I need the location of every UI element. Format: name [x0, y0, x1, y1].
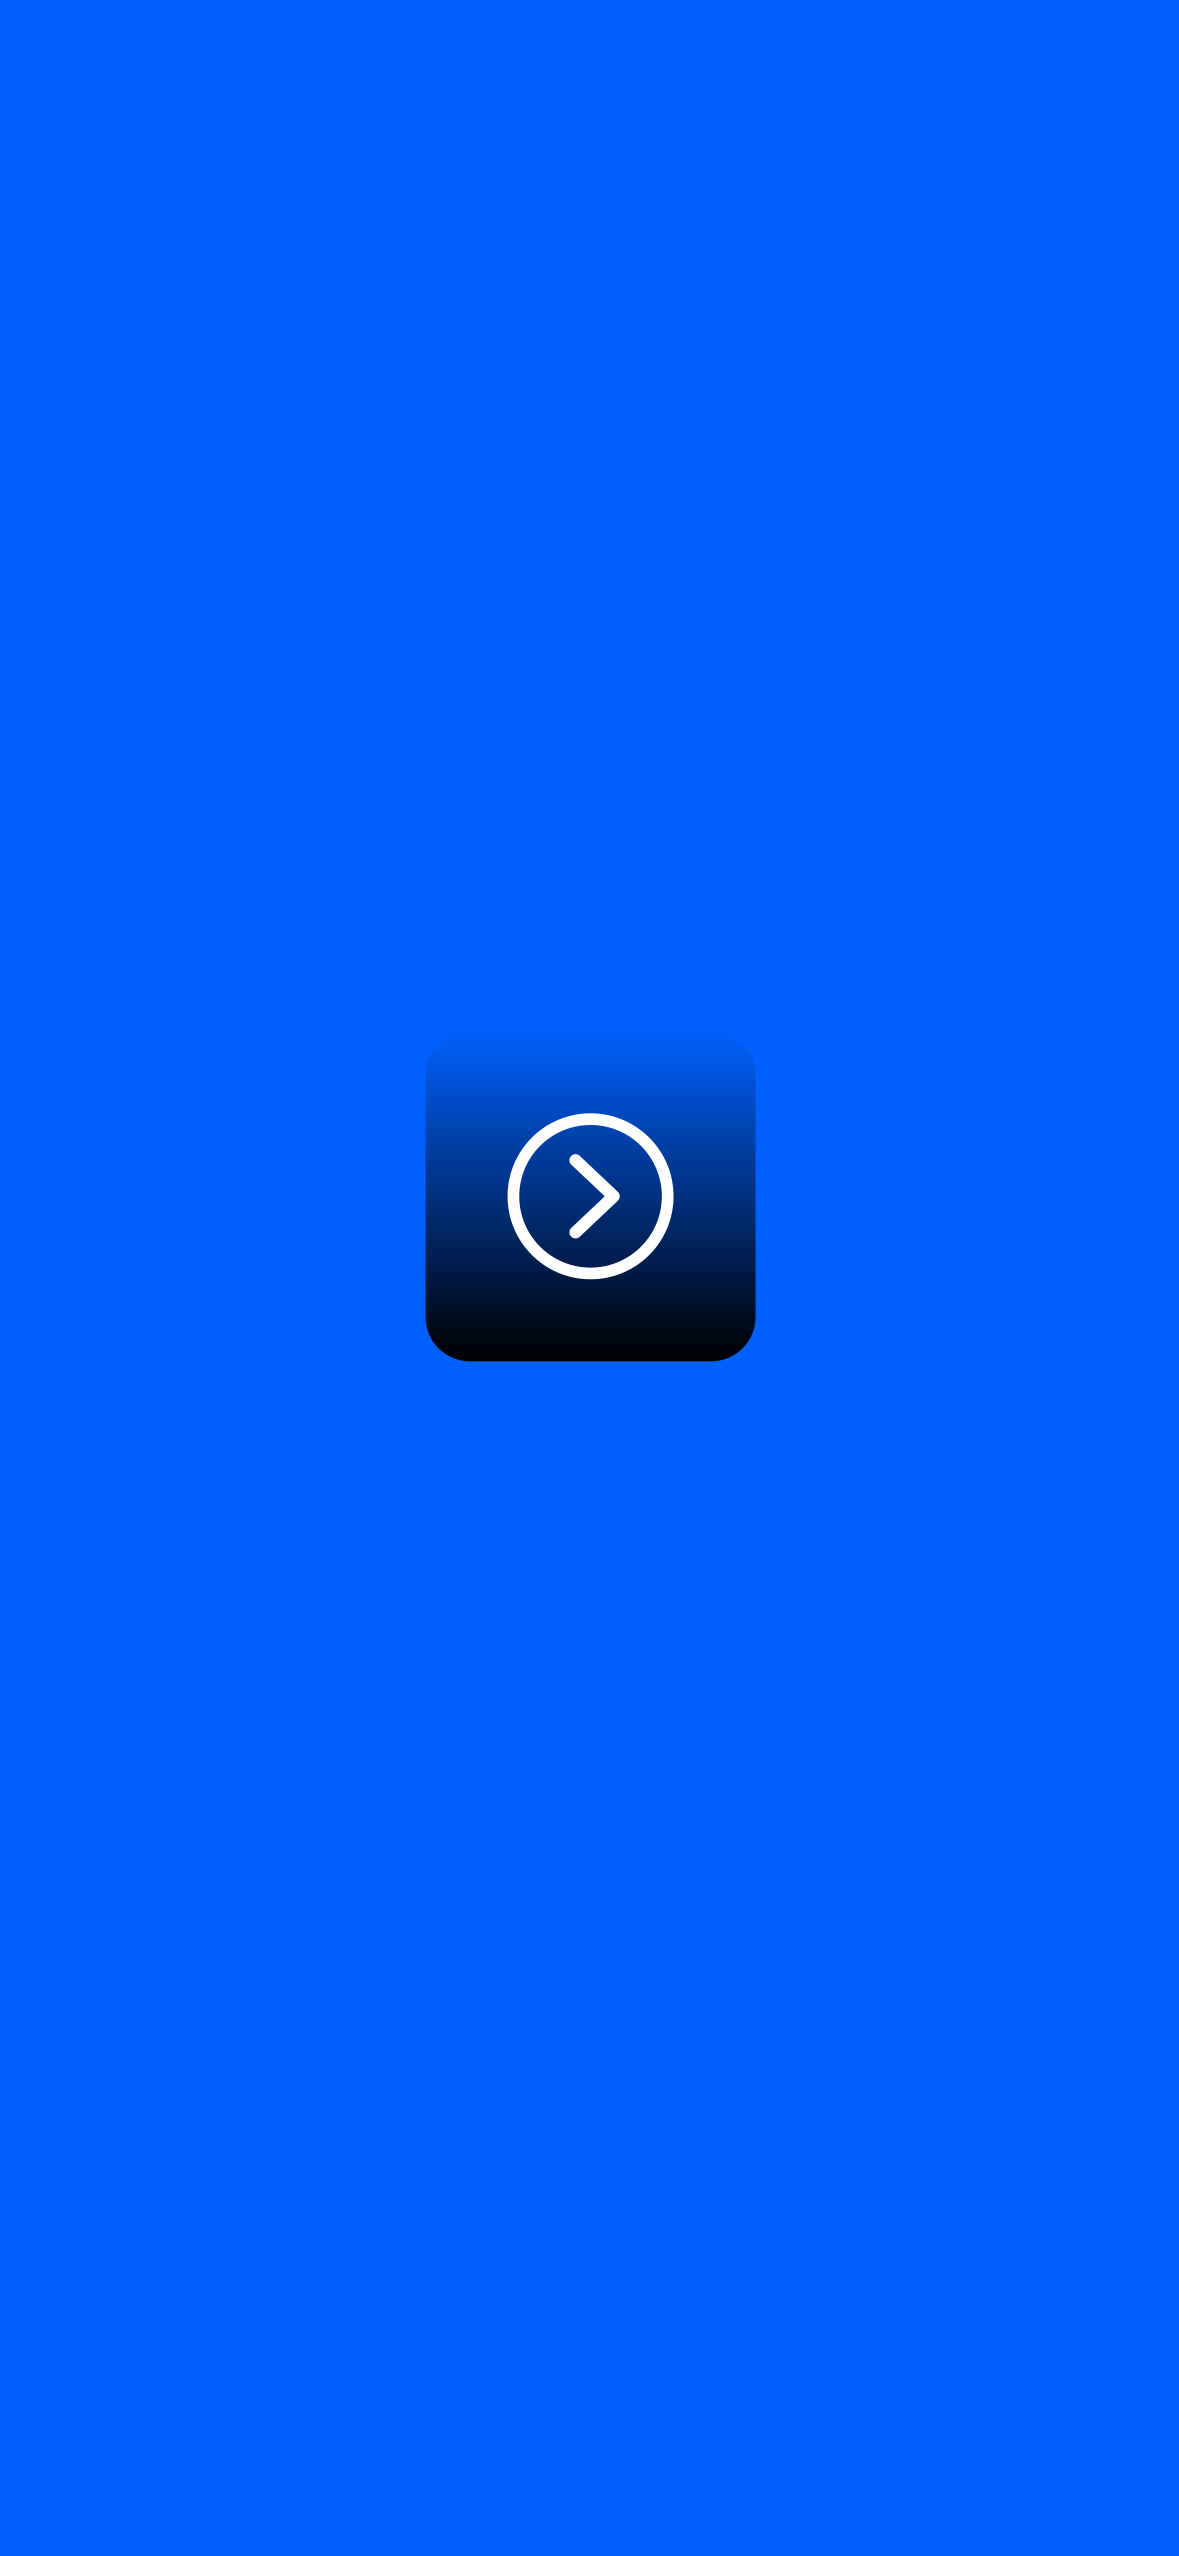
button[interactable]: Continue	[426, 1031, 756, 1361]
